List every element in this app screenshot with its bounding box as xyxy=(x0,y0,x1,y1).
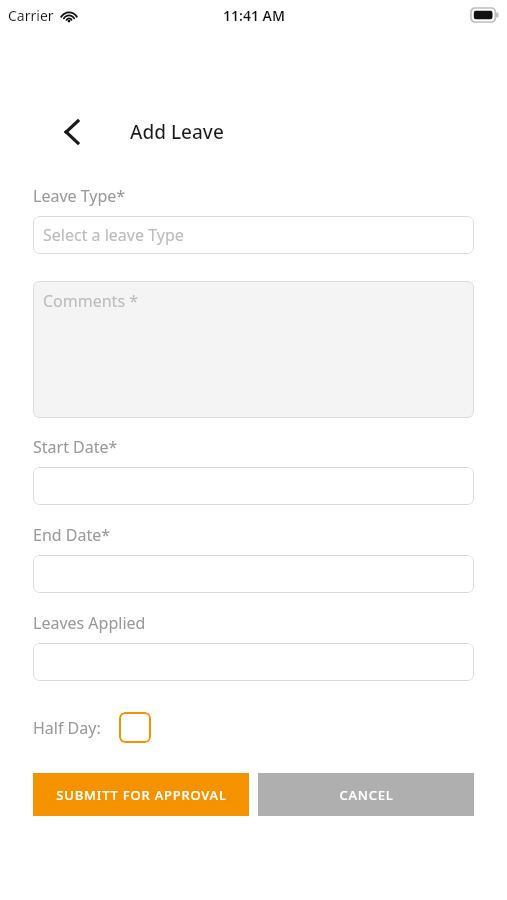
staticText: Carrier xyxy=(8,6,54,25)
staticText: Start Date* xyxy=(33,436,118,458)
staticText: Leaves Applied xyxy=(33,612,146,634)
staticText: End Date* xyxy=(33,524,111,546)
button[interactable] xyxy=(33,555,474,593)
button[interactable] xyxy=(33,467,474,505)
staticText: 11:41 AM xyxy=(223,6,285,25)
staticText: Half Day: xyxy=(33,717,101,739)
staticText: Comments * xyxy=(43,290,139,312)
button[interactable] xyxy=(33,643,474,681)
button[interactable]: Comments * xyxy=(33,281,474,418)
staticText: CANCEL xyxy=(339,786,394,804)
button[interactable]: Back xyxy=(55,115,89,149)
button[interactable]: Select a leave Type xyxy=(33,216,474,254)
button[interactable]: SUBMITT FOR APPROVAL xyxy=(33,773,249,816)
button[interactable]: CANCEL xyxy=(258,773,474,816)
staticText: Select a leave Type xyxy=(43,224,184,246)
staticText: Leave Type* xyxy=(33,185,126,207)
button[interactable]: Half Day checkbox xyxy=(119,712,151,743)
staticText: SUBMITT FOR APPROVAL xyxy=(56,786,227,804)
staticText: Add Leave xyxy=(130,119,224,145)
